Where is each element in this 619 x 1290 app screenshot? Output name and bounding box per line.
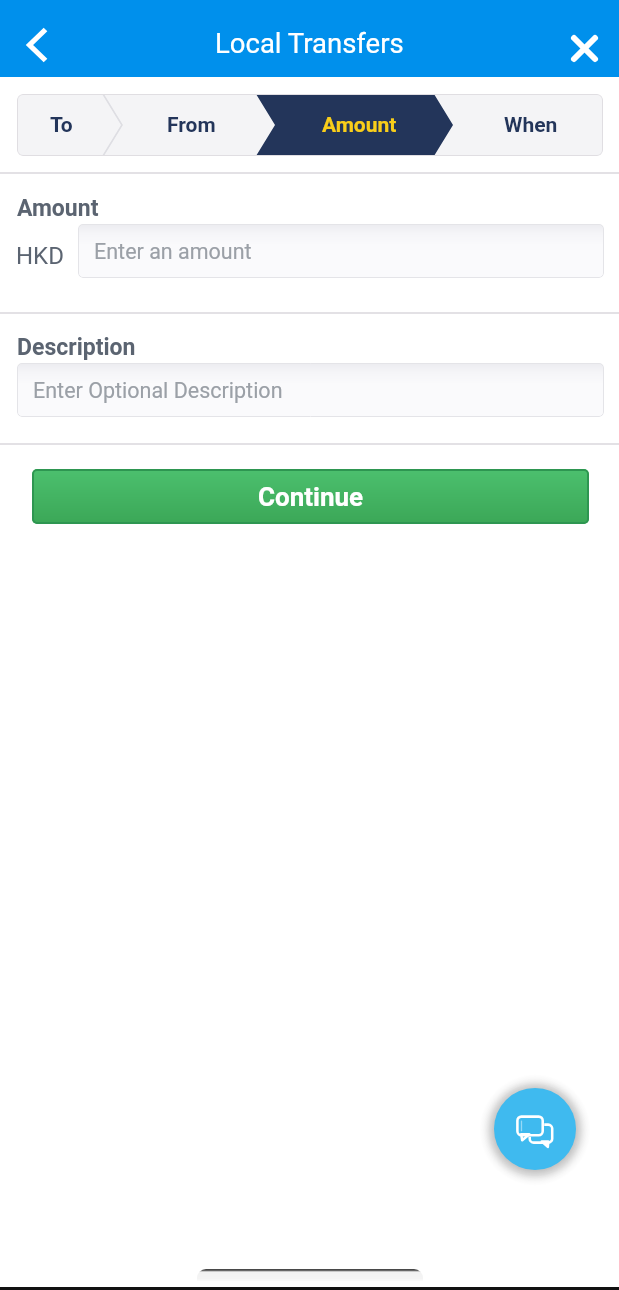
button[interactable]: Continue	[32, 469, 589, 524]
button[interactable]: Close	[557, 19, 609, 71]
button[interactable]: Back	[10, 19, 62, 71]
button[interactable]: When	[453, 94, 603, 156]
staticText: From	[167, 113, 216, 138]
staticText: Amount	[322, 113, 397, 138]
staticText: To	[50, 113, 73, 138]
button[interactable]: Enter Optional Description	[17, 363, 604, 417]
staticText: Continue	[258, 482, 364, 512]
button[interactable]: Chat	[494, 1088, 576, 1170]
staticText: HKD	[16, 242, 64, 270]
staticText: Enter Optional Description	[33, 378, 283, 403]
button[interactable]: To	[17, 94, 112, 156]
button[interactable]: From	[112, 94, 256, 156]
staticText: Local Transfers	[215, 27, 404, 59]
staticText: Enter an amount	[94, 239, 252, 264]
staticText: Description	[17, 334, 136, 361]
staticText: Amount	[17, 195, 99, 222]
button[interactable]: Amount	[256, 94, 453, 156]
staticText: When	[504, 113, 558, 138]
button[interactable]: Enter an amount	[78, 224, 604, 278]
